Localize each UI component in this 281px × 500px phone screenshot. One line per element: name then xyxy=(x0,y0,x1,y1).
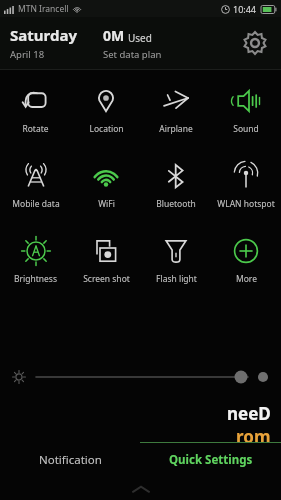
staticText: Used xyxy=(128,31,152,45)
button[interactable]: Brightness xyxy=(8,366,30,388)
staticText: WiFi xyxy=(98,198,115,210)
staticText: rom xyxy=(236,425,271,442)
staticText: 10:44 xyxy=(233,3,257,15)
staticText: Mobile data xyxy=(12,198,60,210)
staticText: Bluetooth xyxy=(156,198,196,210)
button[interactable]: Notification xyxy=(0,442,140,478)
staticText: Screen shot xyxy=(83,273,130,285)
button[interactable]: Collapse xyxy=(128,478,154,500)
button[interactable]: Screen shot xyxy=(71,230,141,291)
button[interactable]: Auto brightness xyxy=(253,367,273,387)
staticText: Quick Settings xyxy=(169,452,253,468)
staticText: Location xyxy=(89,123,124,135)
staticText: Notification xyxy=(39,452,102,468)
staticText: MTN Irancell xyxy=(18,3,69,15)
staticText: Set data plan xyxy=(103,48,162,61)
staticText: April 18 xyxy=(10,48,45,61)
staticText: More xyxy=(236,273,257,285)
staticText: Flash light xyxy=(156,273,197,285)
button[interactable]: Mobile data xyxy=(0,155,71,216)
button[interactable]: Quick Settings xyxy=(140,442,281,478)
button[interactable]: Rotate xyxy=(0,80,71,141)
button[interactable]: Brightness slider xyxy=(36,365,248,389)
button[interactable]: WiFi xyxy=(71,155,141,216)
button[interactable]: More xyxy=(211,230,281,291)
staticText: Rotate xyxy=(22,123,49,135)
staticText: Saturday xyxy=(10,25,77,45)
staticText: neeD xyxy=(227,402,271,425)
button[interactable]: Sound xyxy=(211,80,281,141)
button[interactable]: Airplane xyxy=(141,80,211,141)
staticText: 0M xyxy=(103,26,125,45)
button[interactable]: Settings xyxy=(237,25,273,61)
staticText: Brightness xyxy=(14,273,57,285)
staticText: Sound xyxy=(233,123,259,135)
button[interactable]: WLAN hotspot xyxy=(211,155,281,216)
staticText: Airplane xyxy=(159,123,193,135)
button[interactable]: Location xyxy=(71,80,141,141)
button[interactable]: Bluetooth xyxy=(141,155,211,216)
staticText: WLAN hotspot xyxy=(217,198,275,210)
button[interactable]: Flash light xyxy=(141,230,211,291)
button[interactable]: Brightness xyxy=(0,230,71,291)
